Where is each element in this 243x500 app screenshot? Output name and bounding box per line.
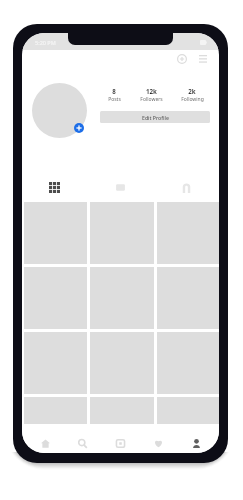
button[interactable]: Menu (196, 52, 209, 65)
button[interactable]: Add to story (74, 123, 84, 133)
staticText: Followers (140, 96, 163, 103)
button[interactable]: Reels (87, 175, 153, 200)
button[interactable]: Profile picture (32, 83, 87, 138)
button[interactable]: Add post (175, 52, 188, 65)
staticText: 8 (112, 87, 116, 95)
button[interactable]: Likes (139, 433, 177, 453)
staticText: 2k (188, 87, 196, 95)
button[interactable]: Posts grid (22, 175, 87, 200)
staticText: 12k (146, 87, 157, 95)
button[interactable]: Home (27, 433, 64, 453)
staticText: Posts (108, 96, 121, 103)
staticText: Edit Profile (142, 114, 169, 121)
button[interactable]: Edit Profile (100, 111, 210, 123)
button[interactable]: Search (64, 433, 101, 453)
button[interactable]: Profile (177, 433, 215, 453)
staticText: Following (181, 96, 204, 103)
staticText: 5:20 PM (35, 39, 56, 46)
button[interactable]: Reels (101, 433, 139, 453)
button[interactable]: Tagged (153, 175, 219, 200)
